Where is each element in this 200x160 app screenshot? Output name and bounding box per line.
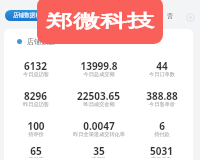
staticText: 待退款 (91, 156, 107, 158)
staticText: 5031 (150, 144, 173, 158)
staticText: 昨日总访客 (23, 101, 49, 108)
staticText: 商品总数 (151, 156, 172, 158)
staticText: 0.0047 (83, 119, 115, 133)
button[interactable]: 100 (4, 114, 67, 144)
button[interactable]: 6 (130, 114, 193, 144)
staticText: 今日总成交额 (83, 71, 115, 78)
button[interactable]: 13999.8 (67, 54, 130, 84)
staticText: 店铺数据 (27, 37, 55, 46)
staticText: 388.88 (146, 89, 178, 103)
button[interactable]: 店铺数据 (17, 29, 193, 54)
staticText: 营 (167, 12, 173, 20)
staticText: 店铺数据概 (13, 12, 41, 19)
button[interactable]: 388.88 (130, 84, 193, 114)
staticText: 22503.65 (77, 89, 120, 103)
button[interactable]: 0.0047 (67, 114, 130, 144)
staticText: 6 (159, 119, 165, 133)
staticText: 35 (93, 144, 105, 158)
staticText: 今日总访客 (23, 71, 49, 78)
staticText: 昨日成交金额 (83, 101, 115, 108)
button[interactable]: Settings (186, 13, 195, 22)
staticText: 6132 (24, 59, 47, 73)
button[interactable]: 65 (4, 144, 67, 160)
staticText: 待发货 (28, 156, 44, 158)
staticText: 今日订单数 (149, 71, 175, 78)
staticText: 昨日全渠道成交转化率 (73, 131, 125, 138)
staticText: 8296 (24, 89, 47, 103)
button[interactable]: 44 (130, 54, 193, 84)
button[interactable]: 店铺数据概 (5, 10, 45, 21)
button[interactable]: 6132 (4, 54, 67, 84)
staticText: 待评价 (28, 131, 44, 138)
staticText: 44 (156, 59, 168, 73)
button[interactable]: 郑微科技 (37, 0, 163, 44)
staticText: 13999.8 (80, 59, 118, 73)
staticText: 65 (30, 144, 42, 158)
button[interactable]: 35 (67, 144, 130, 160)
staticText: 100 (27, 119, 45, 133)
button[interactable]: 22503.65 (67, 84, 130, 114)
button[interactable]: Label (166, 12, 173, 20)
staticText: 郑微科技 (46, 10, 154, 32)
staticText: 今日客单价 (149, 101, 175, 108)
staticText: 待付款 (154, 131, 170, 138)
button[interactable]: 5031 (130, 144, 193, 160)
button[interactable]: 8296 (4, 84, 67, 114)
